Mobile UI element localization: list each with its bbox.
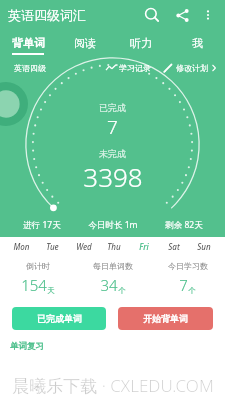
staticText: 开始背单词 [143,313,188,324]
staticText: Sat [168,241,180,252]
staticText: 已完成 [99,102,126,113]
button[interactable]: 我 [169,30,225,56]
button[interactable]: 阅读 [57,30,113,56]
staticText: 34 [100,275,118,295]
button[interactable]: 修改计划 [163,63,217,73]
staticText: 英语四级词汇 [8,7,86,23]
staticText: 7 [107,114,118,140]
staticText: Wed [76,241,92,252]
staticText: 天 [47,286,55,295]
staticText: 今日学习数 [168,261,208,271]
staticText: 已完成单词 [37,313,82,324]
button[interactable]: 开始背单词 [118,307,213,330]
staticText: 晨曦乐下载 · CXLEDU.COM [12,374,214,397]
staticText: 个 [188,286,196,295]
button[interactable]: Share [169,2,195,28]
staticText: 我 [192,36,203,50]
staticText: 每日单词数 [93,261,133,271]
button[interactable]: More options [197,4,219,26]
staticText: 单词复习 [10,341,44,352]
staticText: Mon [13,241,30,252]
button[interactable]: 倒计时 [0,261,75,295]
staticText: 阅读 [74,36,96,50]
staticText: 154 [21,275,47,295]
staticText: 未完成 [99,148,126,159]
staticText: 7 [179,275,188,295]
staticText: 听力 [130,36,152,50]
staticText: 进行 17天 [23,219,61,231]
staticText: 今日时长 1m [88,219,138,231]
button[interactable]: 今日学习数 [150,261,225,295]
button[interactable]: 已完成单词 [12,307,106,330]
staticText: 个 [118,286,126,295]
staticText: 倒计时 [26,261,50,271]
button[interactable]: 背单词 [0,30,57,56]
staticText: 学习记录 [119,63,151,73]
staticText: Fri [139,241,149,252]
staticText: 剩余 82天 [165,219,203,231]
staticText: Thu [107,241,121,252]
button[interactable]: Search [139,2,165,28]
staticText: 修改计划 [176,63,208,73]
staticText: Tue [46,241,59,252]
staticText: 背单词 [12,36,45,50]
staticText: Sun [197,241,211,252]
staticText: 3398 [83,159,143,194]
button[interactable]: 听力 [113,30,169,56]
button[interactable]: 每日单词数 [75,261,150,295]
button[interactable]: 学习记录 [106,63,151,73]
staticText: 英语四级 [14,63,46,73]
